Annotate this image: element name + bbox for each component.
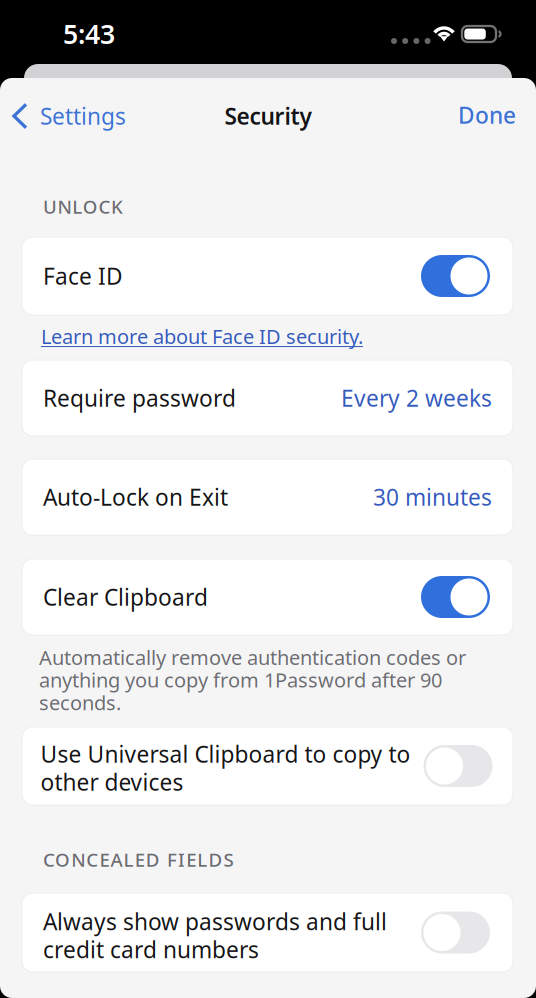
staticText: Security <box>224 101 311 131</box>
button[interactable]: Require password <box>22 360 513 436</box>
staticText: Auto-Lock on Exit <box>43 482 228 512</box>
button[interactable]: Face ID <box>22 237 513 315</box>
button[interactable]: Clear Clipboard <box>22 559 513 635</box>
button[interactable]: Learn more about Face ID security. <box>41 323 363 350</box>
button[interactable]: Settings <box>12 101 126 131</box>
staticText: 5:43 <box>63 16 115 51</box>
staticText: UNLOCK <box>43 194 123 219</box>
staticText: Always show passwords and full credit ca… <box>43 906 387 965</box>
staticText: Settings <box>40 101 126 131</box>
staticText: CONCEALED FIELDS <box>43 847 233 872</box>
staticText: Use Universal Clipboard to copy to other… <box>40 739 410 797</box>
staticText: Learn more about Face ID security. <box>41 323 363 350</box>
staticText: 30 minutes <box>373 482 492 512</box>
staticText: Require password <box>43 383 236 413</box>
staticText: Automatically remove authentication code… <box>39 644 466 716</box>
button[interactable]: Done <box>458 100 516 130</box>
staticText: Every 2 weeks <box>341 383 492 413</box>
staticText: Clear Clipboard <box>43 582 208 612</box>
button[interactable]: Auto-Lock on Exit <box>22 459 513 535</box>
button[interactable]: Always show passwords and full credit ca… <box>22 893 513 972</box>
staticText: Face ID <box>43 261 123 291</box>
staticText: Done <box>458 100 516 130</box>
button[interactable]: Use Universal Clipboard to copy to other… <box>22 727 513 805</box>
